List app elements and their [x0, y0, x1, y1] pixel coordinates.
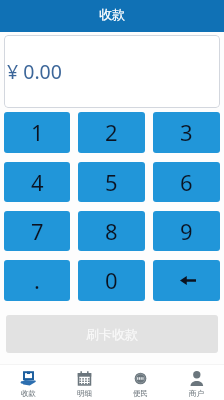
button[interactable]: 7	[4, 211, 70, 251]
staticText: 收款	[21, 389, 36, 398]
staticText: 5	[105, 167, 118, 197]
staticText: 商户	[189, 389, 204, 398]
staticText: 明细	[77, 389, 92, 398]
button[interactable]: 收款	[0, 365, 56, 400]
staticText: 3	[180, 117, 193, 147]
button[interactable]: ¥ 0.00	[4, 35, 220, 108]
button[interactable]: 8	[78, 211, 145, 251]
button[interactable]: 1	[4, 112, 70, 153]
button[interactable]: .	[4, 260, 70, 301]
button[interactable]: 3	[153, 112, 220, 153]
button[interactable]: 4	[4, 162, 70, 202]
staticText: 便民	[133, 389, 148, 398]
button[interactable]: 6	[153, 162, 220, 202]
button[interactable]: 5	[78, 162, 145, 202]
staticText: 1	[31, 117, 44, 147]
staticText: 0	[105, 265, 118, 295]
staticText: ¥ 0.00	[7, 58, 62, 85]
staticText: 刷卡收款	[86, 326, 138, 342]
staticText: 4	[31, 167, 44, 197]
staticText: .	[34, 265, 40, 295]
button[interactable]: 便民	[112, 365, 168, 400]
staticText: 9	[180, 216, 193, 246]
staticText: 2	[105, 117, 118, 147]
button[interactable]: Backspace	[153, 260, 220, 301]
button[interactable]: 2	[78, 112, 145, 153]
button[interactable]: 0	[78, 260, 145, 301]
button[interactable]: 刷卡收款	[6, 315, 218, 353]
button[interactable]: 明细	[56, 365, 112, 400]
staticText: 7	[31, 216, 44, 246]
staticText: 收款	[99, 6, 125, 22]
button[interactable]: 商户	[168, 365, 224, 400]
staticText: 8	[105, 216, 118, 246]
staticText: 6	[180, 167, 193, 197]
button[interactable]: 9	[153, 211, 220, 251]
